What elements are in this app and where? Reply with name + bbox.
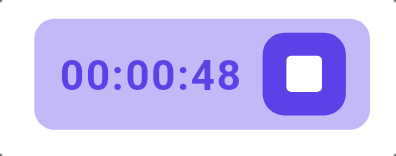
button[interactable]: Stop timer: [263, 33, 346, 116]
button[interactable]: 00:00:48: [34, 19, 370, 130]
staticText: 00:00:48: [60, 51, 243, 100]
